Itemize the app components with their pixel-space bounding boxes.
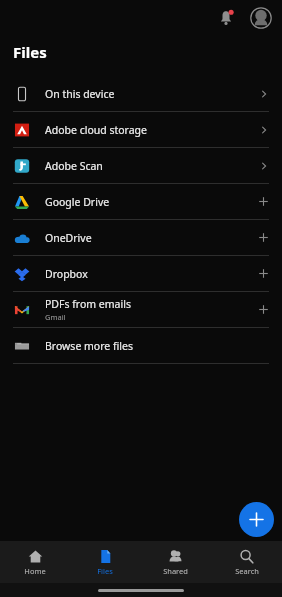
button[interactable]: Google Drive (0, 184, 282, 219)
button[interactable]: Notifications (212, 4, 240, 32)
staticText: Search (235, 566, 259, 576)
button[interactable]: Browse more files (0, 328, 282, 363)
staticText: Adobe cloud storage (45, 123, 147, 137)
button[interactable]: Home (0, 541, 70, 583)
staticText: OneDrive (45, 231, 92, 245)
staticText: Browse more files (45, 339, 133, 353)
staticText: On this device (45, 87, 115, 101)
staticText: PDFs from emails (45, 297, 131, 311)
staticText: Shared (163, 566, 188, 576)
staticText: Dropbox (45, 267, 88, 281)
button[interactable]: Files (70, 541, 140, 583)
button[interactable]: Dropbox (0, 256, 282, 291)
button[interactable]: On this device (0, 76, 282, 111)
button[interactable]: OneDrive (0, 220, 282, 255)
staticText: Google Drive (45, 195, 110, 209)
staticText: Home (24, 566, 46, 576)
staticText: Adobe Scan (45, 159, 103, 173)
button[interactable]: Adobe cloud storage (0, 112, 282, 147)
staticText: Files (97, 566, 113, 576)
button[interactable]: PDFs from emails (0, 292, 282, 327)
button[interactable]: Account (248, 5, 274, 31)
button[interactable]: Create new file (239, 502, 274, 537)
button[interactable]: Shared (140, 541, 211, 583)
button[interactable]: Adobe Scan (0, 148, 282, 183)
button[interactable]: Search (211, 541, 282, 583)
staticText: Files (13, 42, 47, 62)
staticText: Gmail (45, 312, 66, 322)
